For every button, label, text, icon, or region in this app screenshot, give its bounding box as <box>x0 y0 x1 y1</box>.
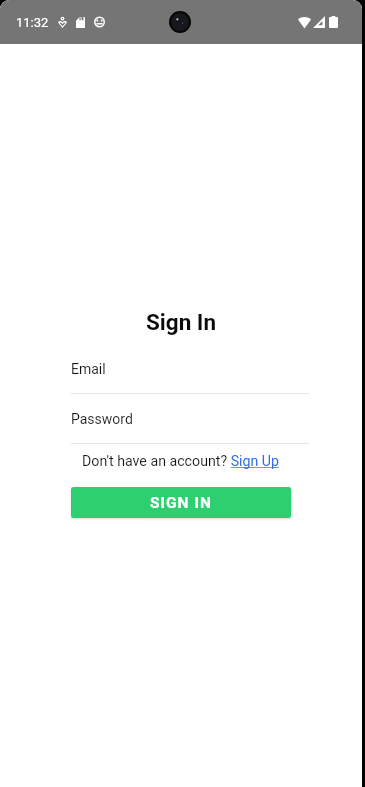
staticText: Email <box>71 361 106 377</box>
staticText: Sign In <box>146 309 217 335</box>
staticText: SIGN IN <box>150 494 212 512</box>
button[interactable]: Email <box>71 355 309 394</box>
button[interactable]: Password <box>71 405 309 444</box>
other: Battery <box>329 16 338 28</box>
other: Ringer <box>58 17 67 28</box>
other: Mobile signal <box>313 16 325 28</box>
button[interactable]: SIGN IN <box>71 487 291 518</box>
other: Notification <box>94 16 105 28</box>
staticText: Password <box>71 411 133 427</box>
other: SIM card <box>76 17 85 28</box>
button[interactable]: Don't have an account? Sign Up <box>82 453 280 470</box>
other: Wi-Fi <box>298 15 311 29</box>
staticText: 11:32 <box>16 15 49 30</box>
